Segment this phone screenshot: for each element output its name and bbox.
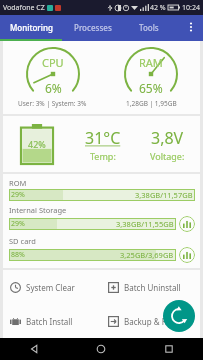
staticText: Batch Install <box>26 316 73 327</box>
button[interactable]: SD card <box>9 236 195 263</box>
staticText: ROM <box>9 178 27 188</box>
staticText: Backup & Restore <box>124 316 191 327</box>
staticText: Processes <box>74 22 112 33</box>
staticText: 3,38GB/11,55GB <box>116 219 174 229</box>
staticText: Vodafone CZ <box>3 3 45 13</box>
staticText: Voltage: <box>150 150 185 162</box>
button[interactable]: Recent apps <box>135 338 203 360</box>
staticText: 6% <box>45 80 62 96</box>
staticText: SD card <box>9 236 36 246</box>
button[interactable]: 42% <box>3 116 71 172</box>
staticText: Tools <box>139 22 159 33</box>
button[interactable]: 31°C <box>71 116 135 172</box>
staticText: 42% <box>28 138 46 150</box>
staticText: System Clear <box>26 282 75 293</box>
button[interactable]: Internal Storage <box>9 205 195 232</box>
staticText: 1,28GB | 1,95GB <box>126 99 177 108</box>
button[interactable]: Tools <box>124 15 174 39</box>
staticText: RAM <box>139 55 163 70</box>
staticText: 42 % <box>150 3 166 13</box>
button[interactable]: Monitoring <box>0 15 62 39</box>
button[interactable]: Batch Uninstall <box>101 270 200 304</box>
button[interactable]: ROM <box>9 178 195 201</box>
staticText: 3,8V <box>151 127 184 149</box>
staticText: User: 3% | System: 3% <box>18 99 87 108</box>
staticText: Internal Storage <box>9 205 67 215</box>
staticText: CPU <box>42 55 64 70</box>
button[interactable]: More options <box>179 15 203 39</box>
staticText: 10:24 <box>182 3 200 13</box>
button[interactable]: Processes <box>62 15 124 39</box>
button[interactable]: RAM <box>101 41 200 114</box>
staticText: 31°C <box>85 127 121 149</box>
button[interactable]: System Clear <box>3 270 101 304</box>
button[interactable]: Home <box>67 338 135 360</box>
staticText: Batch Uninstall <box>124 282 181 293</box>
button[interactable]: Batch Install <box>3 304 101 338</box>
staticText: 3,38GB/11,57GB <box>135 190 193 200</box>
staticText: 65% <box>139 80 163 96</box>
staticText: 3,25GB/3,69GB <box>120 250 174 260</box>
staticText: 88% <box>11 250 25 260</box>
button[interactable]: Refresh <box>163 300 195 332</box>
button[interactable]: Storage details <box>179 247 195 263</box>
button[interactable]: CPU <box>3 41 101 114</box>
button[interactable]: Back <box>0 338 67 360</box>
button[interactable]: 3,8V <box>135 116 200 172</box>
staticText: Temp: <box>90 150 116 162</box>
button[interactable]: Storage details <box>179 216 195 232</box>
staticText: 29% <box>11 219 25 229</box>
button[interactable]: Backup & Restore <box>101 304 200 338</box>
staticText: Monitoring <box>10 22 53 33</box>
staticText: 29% <box>11 190 25 200</box>
